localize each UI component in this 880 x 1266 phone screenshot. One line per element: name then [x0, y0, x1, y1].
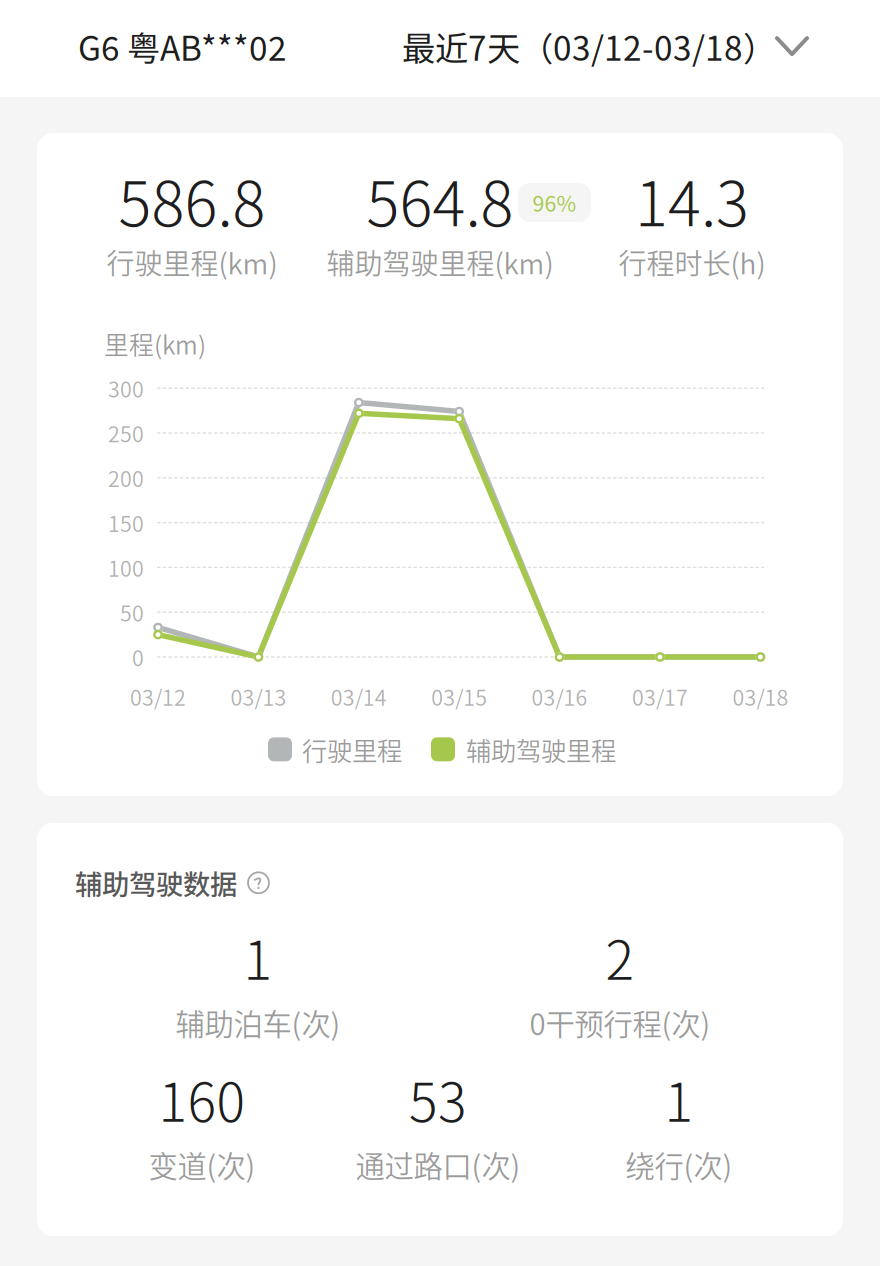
button[interactable]: 辅助驾驶数据说明	[247, 871, 270, 894]
staticText: 14.3	[635, 155, 749, 244]
staticText: 160	[158, 1060, 245, 1137]
staticText: 100	[108, 552, 144, 583]
staticText: 最近7天（03/12-03/18）	[402, 22, 776, 70]
staticText: 1	[243, 918, 272, 995]
staticText: 0	[132, 642, 144, 672]
staticText: 绕行(次)	[625, 1143, 732, 1186]
button[interactable]: G6 粤AB***02	[60, 8, 305, 84]
staticText: 300	[108, 373, 144, 404]
staticText: 586.8	[118, 155, 265, 244]
staticText: 里程(km)	[104, 326, 206, 362]
staticText: 变道(次)	[148, 1143, 255, 1186]
staticText: 2	[605, 918, 634, 995]
staticText: 03/13	[230, 681, 286, 712]
staticText: 03/15	[431, 681, 487, 712]
staticText: 辅助泊车(次)	[175, 1001, 340, 1044]
staticText: 150	[108, 507, 144, 538]
staticText: 辅助驾驶数据	[75, 863, 237, 903]
staticText: 03/14	[331, 681, 387, 712]
staticText: 564.8	[366, 155, 513, 244]
staticText: 辅助驾驶里程	[466, 731, 616, 768]
staticText: 03/12	[130, 681, 186, 712]
staticText: 1	[664, 1060, 693, 1137]
staticText: 通过路口(次)	[355, 1143, 520, 1186]
staticText: 03/18	[732, 681, 788, 712]
staticText: 250	[108, 418, 144, 448]
staticText: 03/16	[532, 681, 588, 712]
staticText: 0干预行程(次)	[529, 1001, 710, 1044]
staticText: 50	[120, 597, 144, 628]
staticText: 200	[108, 462, 144, 493]
staticText: 96%	[532, 187, 576, 218]
staticText: 辅助驾驶里程(km)	[326, 242, 553, 282]
staticText: 行程时长(h)	[618, 242, 765, 282]
staticText: G6 粤AB***02	[78, 22, 287, 70]
button[interactable]: 最近7天（03/12-03/18）	[384, 8, 825, 84]
staticText: 行驶里程	[302, 731, 402, 768]
staticText: 行驶里程(km)	[106, 242, 277, 282]
staticText: 53	[409, 1060, 467, 1137]
staticText: 03/17	[632, 681, 688, 712]
